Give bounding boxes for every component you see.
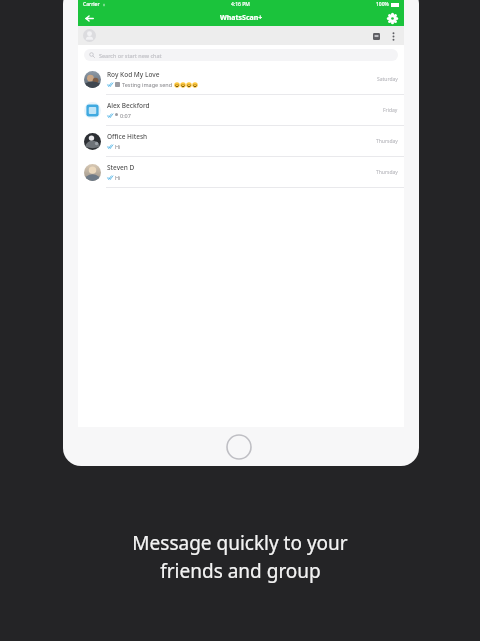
staticText: Alex Beckford bbox=[107, 101, 150, 110]
staticText: Roy Kod My Love bbox=[107, 70, 160, 79]
button[interactable]: Steven D bbox=[78, 157, 404, 187]
staticText: 4:16 PM bbox=[231, 1, 250, 8]
button[interactable]: Home bbox=[226, 434, 252, 460]
staticText: 0:07 bbox=[120, 112, 131, 119]
staticText: Search or start new chat bbox=[99, 52, 162, 59]
button[interactable]: Search or start new chat bbox=[84, 49, 398, 61]
button[interactable]: New chat bbox=[370, 30, 382, 42]
staticText: Testing image send bbox=[122, 81, 173, 88]
button[interactable]: More options bbox=[387, 30, 399, 42]
button[interactable]: Roy Kod My Love bbox=[78, 64, 404, 94]
staticText: Steven D bbox=[107, 163, 135, 172]
staticText: Friday bbox=[383, 107, 398, 114]
staticText: Thursday bbox=[376, 138, 398, 145]
staticText: Hi bbox=[115, 143, 121, 150]
button[interactable]: Office Hitesh bbox=[78, 126, 404, 156]
button[interactable]: Back bbox=[82, 11, 96, 25]
button[interactable]: Settings bbox=[385, 11, 399, 25]
staticText: friends and group bbox=[160, 558, 321, 584]
staticText: Message quickly to your bbox=[132, 530, 348, 556]
button[interactable]: Alex Beckford bbox=[78, 95, 404, 125]
staticText: Saturday bbox=[377, 76, 398, 83]
staticText: WhatsScan+ bbox=[220, 13, 263, 23]
staticText: Thursday bbox=[376, 169, 398, 176]
staticText: Office Hitesh bbox=[107, 132, 148, 141]
staticText: Hi bbox=[115, 174, 121, 181]
staticText: 100% bbox=[376, 1, 389, 8]
staticText: Carrier bbox=[83, 1, 100, 8]
